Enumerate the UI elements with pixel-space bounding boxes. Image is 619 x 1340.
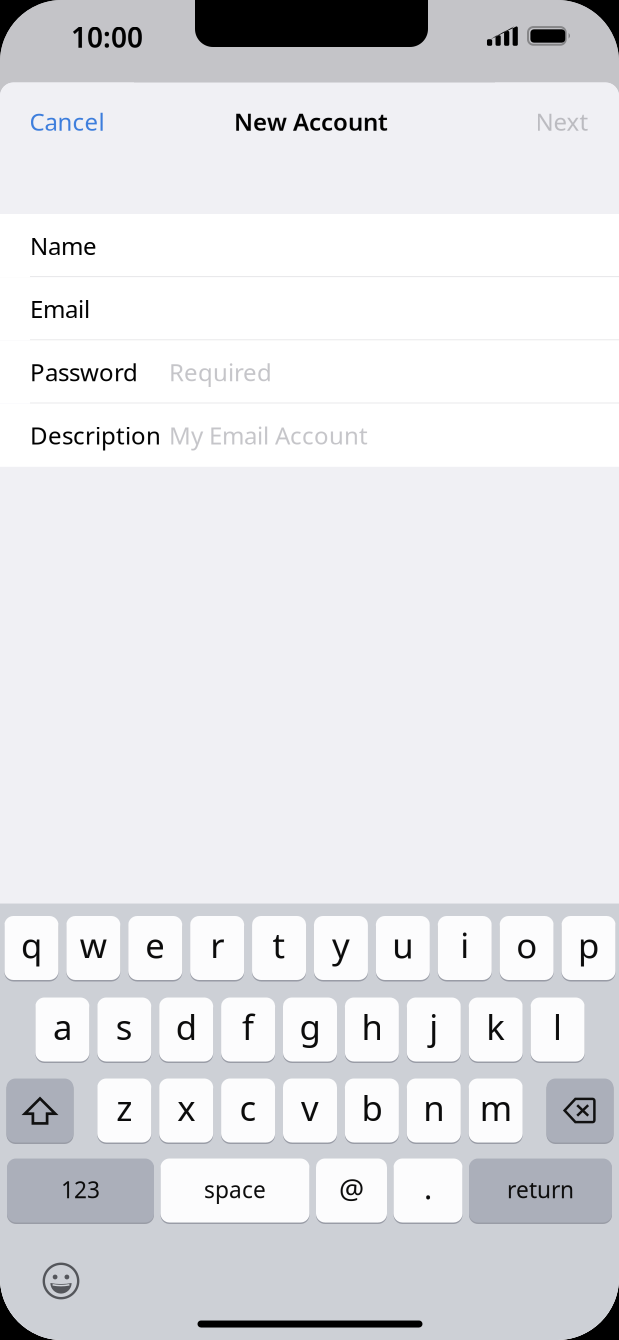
- staticText: q: [21, 922, 42, 968]
- button[interactable]: @: [316, 1157, 387, 1224]
- button[interactable]: d: [159, 996, 213, 1063]
- staticText: @: [339, 1170, 364, 1207]
- staticText: Password: [30, 356, 138, 388]
- staticText: Required: [169, 356, 272, 388]
- button[interactable]: j: [407, 996, 461, 1063]
- button[interactable]: Shift: [6, 1077, 73, 1144]
- button[interactable]: x: [159, 1077, 213, 1144]
- staticText: .: [424, 1167, 432, 1208]
- button[interactable]: k: [469, 996, 523, 1063]
- staticText: e: [145, 922, 165, 968]
- staticText: b: [361, 1084, 382, 1130]
- staticText: g: [299, 1003, 320, 1049]
- button[interactable]: r: [190, 914, 244, 982]
- button[interactable]: Password: [0, 340, 619, 404]
- staticText: f: [242, 1003, 254, 1049]
- staticText: Name: [30, 230, 97, 262]
- button[interactable]: w: [66, 914, 120, 982]
- button[interactable]: z: [97, 1077, 151, 1144]
- button[interactable]: f: [221, 996, 275, 1063]
- staticText: m: [480, 1084, 512, 1130]
- staticText: Description: [30, 419, 161, 451]
- button[interactable]: 123: [7, 1157, 154, 1224]
- staticText: y: [332, 922, 350, 968]
- staticText: space: [204, 1174, 266, 1204]
- button[interactable]: space: [160, 1157, 309, 1224]
- button[interactable]: o: [500, 914, 554, 982]
- button[interactable]: c: [221, 1077, 275, 1144]
- button[interactable]: a: [35, 996, 89, 1063]
- staticText: Email: [30, 293, 90, 325]
- staticText: l: [553, 1003, 562, 1049]
- button[interactable]: y: [314, 914, 368, 982]
- staticText: My Email Account: [169, 419, 368, 451]
- button[interactable]: Cancel: [0, 82, 134, 160]
- staticText: d: [176, 1003, 197, 1049]
- staticText: u: [392, 922, 413, 968]
- staticText: 10:00: [71, 18, 143, 56]
- button[interactable]: p: [561, 914, 615, 982]
- button[interactable]: v: [283, 1077, 337, 1144]
- staticText: return: [507, 1174, 574, 1204]
- staticText: p: [578, 922, 599, 968]
- staticText: w: [80, 922, 107, 968]
- button[interactable]: Next: [495, 82, 619, 160]
- staticText: New Account: [234, 106, 388, 137]
- button[interactable]: n: [407, 1077, 461, 1144]
- button[interactable]: Name: [0, 214, 619, 277]
- staticText: Cancel: [29, 106, 104, 137]
- staticText: v: [301, 1084, 319, 1130]
- staticText: z: [116, 1084, 132, 1130]
- staticText: n: [423, 1084, 444, 1130]
- button[interactable]: q: [4, 914, 58, 982]
- staticText: Next: [535, 106, 588, 137]
- staticText: i: [460, 922, 469, 968]
- button[interactable]: b: [345, 1077, 399, 1144]
- staticText: o: [516, 922, 537, 968]
- button[interactable]: .: [393, 1157, 462, 1224]
- button[interactable]: g: [283, 996, 337, 1063]
- button[interactable]: e: [128, 914, 182, 982]
- staticText: k: [486, 1003, 505, 1049]
- staticText: a: [53, 1003, 72, 1049]
- button[interactable]: t: [252, 914, 306, 982]
- button[interactable]: Emoji keyboard: [37, 1257, 85, 1305]
- button[interactable]: return: [469, 1157, 612, 1224]
- button[interactable]: l: [531, 996, 585, 1063]
- staticText: r: [210, 922, 224, 968]
- button[interactable]: h: [345, 996, 399, 1063]
- button[interactable]: Email: [0, 277, 619, 340]
- staticText: x: [177, 1084, 195, 1130]
- button[interactable]: s: [97, 996, 151, 1063]
- button[interactable]: Delete: [546, 1077, 613, 1144]
- staticText: j: [429, 1003, 438, 1049]
- staticText: c: [240, 1084, 257, 1130]
- button[interactable]: i: [438, 914, 492, 982]
- button[interactable]: Description: [0, 404, 619, 467]
- button[interactable]: m: [469, 1077, 523, 1144]
- button[interactable]: u: [376, 914, 430, 982]
- staticText: 123: [61, 1174, 100, 1204]
- staticText: h: [361, 1003, 382, 1049]
- staticText: t: [272, 922, 285, 968]
- staticText: s: [116, 1003, 133, 1049]
